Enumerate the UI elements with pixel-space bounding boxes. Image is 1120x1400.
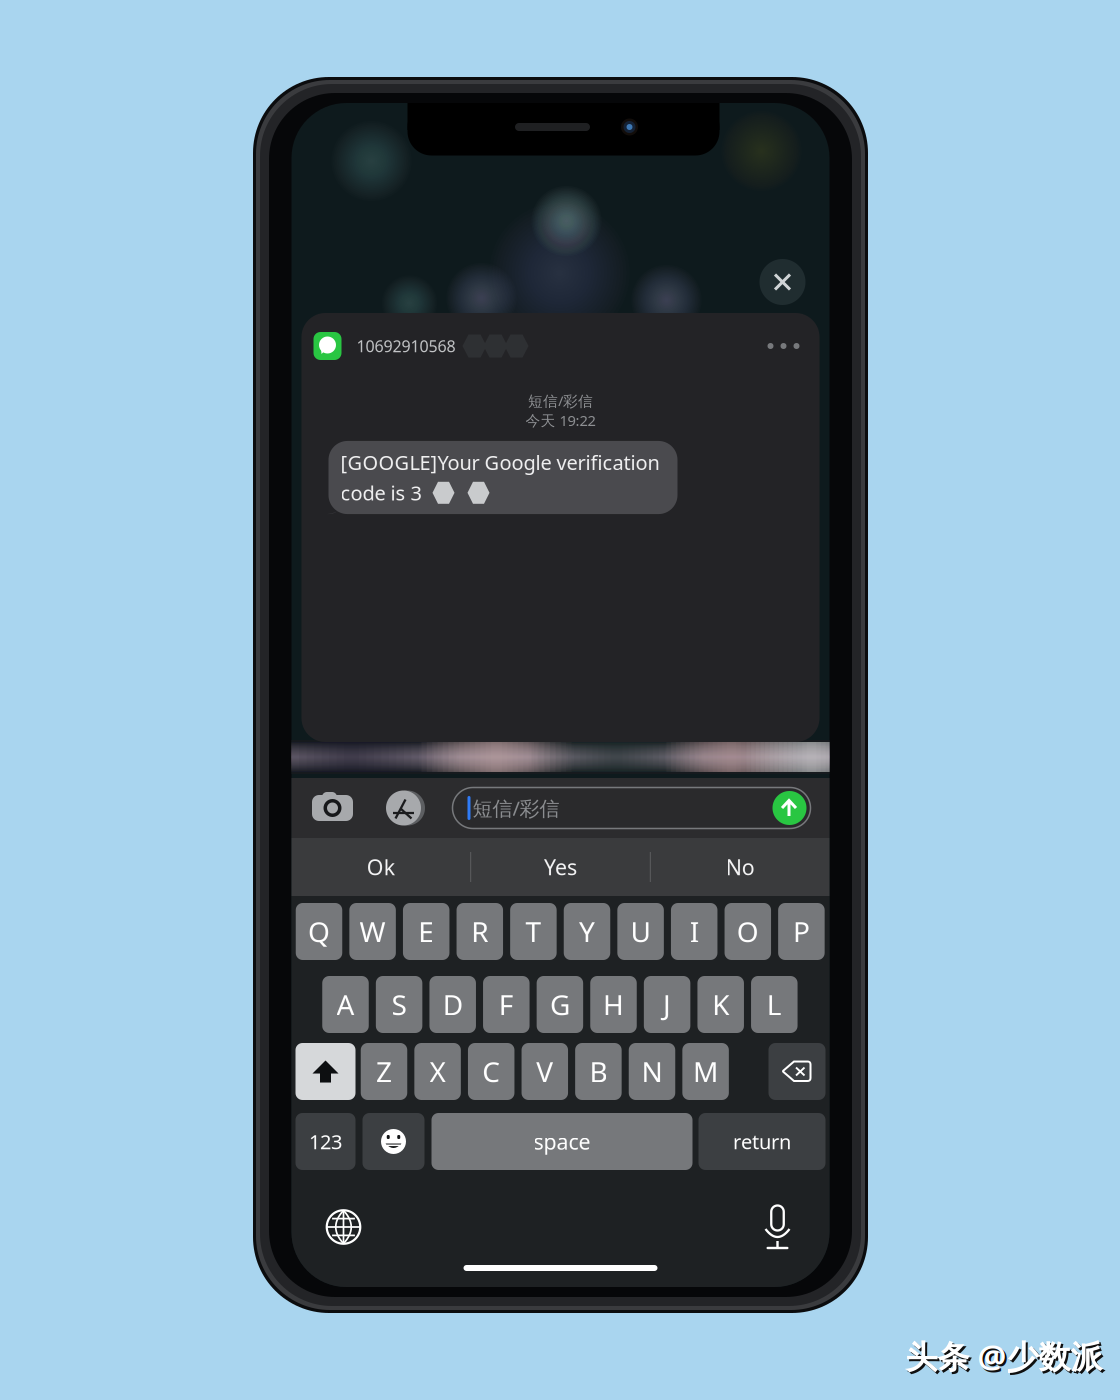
staticText: N [641,1053,662,1090]
button[interactable]: G [537,976,583,1033]
button[interactable]: N [629,1043,675,1100]
staticText: B [589,1053,607,1090]
button[interactable]: Change keyboard [323,1207,363,1247]
staticText: 今天 19:22 [525,410,595,430]
staticText: O [737,913,759,950]
staticText: W [360,913,386,950]
staticText: 头条 @少数派 [905,1335,1102,1377]
button[interactable]: Shift [295,1043,355,1100]
staticText: I [690,913,699,950]
staticText: V [536,1053,553,1090]
button[interactable]: U [617,903,664,960]
staticText: D [443,986,463,1023]
button[interactable]: B [575,1043,622,1100]
button[interactable]: M [682,1043,729,1100]
staticText: S [392,986,407,1023]
staticText: L [767,986,782,1023]
button[interactable]: Close [759,259,805,305]
button[interactable]: space [431,1113,692,1170]
staticText: 头条 @少数派 [907,1337,1104,1379]
staticText: Y [579,913,595,950]
staticText: T [525,913,541,950]
staticText: 10692910568 [356,335,455,357]
button[interactable]: Apps [383,790,423,825]
button[interactable]: S [376,976,422,1033]
staticText: 短信/彩信 [528,391,593,410]
staticText: Yes [544,853,577,881]
staticText: E [418,913,434,950]
button[interactable]: Send [772,791,806,825]
staticText: F [499,986,514,1023]
button[interactable]: L [751,976,797,1033]
button[interactable]: Camera [310,788,354,828]
staticText: X [430,1053,446,1090]
button[interactable]: Dictate [755,1204,799,1252]
button[interactable]: Y [564,903,610,960]
button[interactable]: A [322,976,369,1033]
button[interactable]: More options [761,331,805,361]
staticText: Ok [367,853,395,881]
staticText: 短信/彩信 [472,795,559,821]
staticText: M [693,1053,718,1090]
staticText: U [631,913,651,950]
staticText: code is 3 [340,479,421,506]
button[interactable]: V [521,1043,568,1100]
button[interactable]: F [483,976,530,1033]
button[interactable]: J [644,976,690,1033]
button[interactable]: P [778,903,825,960]
button[interactable]: W [349,903,396,960]
button[interactable]: Yes [471,838,650,896]
staticText: G [550,986,570,1023]
button[interactable]: C [468,1043,514,1100]
staticText: H [603,986,624,1023]
button[interactable]: Delete [768,1043,825,1100]
button[interactable]: Z [361,1043,407,1100]
button[interactable]: Ok [291,838,470,896]
staticText: No [726,853,755,881]
button[interactable]: R [457,903,503,960]
staticText: space [533,1127,590,1156]
staticText: Q [308,913,330,950]
button[interactable]: O [724,903,771,960]
staticText: R [471,913,488,950]
button[interactable]: X [414,1043,461,1100]
button[interactable]: Emoji [362,1113,424,1170]
staticText: 123 [309,1128,342,1155]
staticText: C [482,1053,500,1090]
button[interactable]: Q [296,903,342,960]
button[interactable]: 123 [295,1113,355,1170]
staticText: K [712,986,729,1023]
staticText: Z [376,1053,392,1090]
staticText: A [336,986,354,1023]
staticText: J [663,986,671,1023]
button[interactable]: D [429,976,476,1033]
staticText: P [793,913,810,950]
button[interactable]: T [510,903,557,960]
button[interactable]: H [590,976,637,1033]
button[interactable]: return [698,1113,825,1170]
button[interactable]: No [651,838,829,896]
staticText: return [733,1128,791,1155]
button[interactable]: E [403,903,449,960]
button[interactable]: K [697,976,744,1033]
staticText: [GOOGLE]Your Google verification [340,449,659,476]
button[interactable]: I [671,903,717,960]
